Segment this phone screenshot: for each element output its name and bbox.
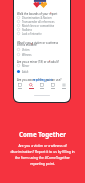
staticText: * — [49, 60, 51, 64]
staticText: Are you a victim or a witness of discrim… — [9, 143, 76, 166]
staticText: Stalking — [22, 28, 32, 31]
staticText: Transgender all references — [22, 20, 55, 23]
staticText: Walk the bounds of your report — [17, 12, 58, 16]
button[interactable]: Share — [48, 83, 58, 89]
staticText: * — [31, 43, 33, 47]
staticText: Adult — [22, 70, 29, 73]
button[interactable]: Minor — [17, 64, 30, 67]
staticText: Discrimination & Racism — [22, 16, 52, 19]
button[interactable]: Adult — [17, 70, 29, 73]
staticText: Victim — [22, 48, 30, 51]
button[interactable]: Victim — [17, 48, 30, 51]
button[interactable]: Discrimination & Racism — [17, 16, 52, 19]
button[interactable]: Save — [37, 83, 47, 89]
staticText: Match lines or competitive — [22, 24, 55, 27]
staticText: Are you a minor (18) or an adult? — [17, 60, 59, 64]
staticText: * — [50, 12, 52, 16]
staticText: Come Together — [19, 130, 66, 138]
button[interactable]: Stalking — [17, 28, 32, 31]
staticText: Lack of integrity — [22, 32, 42, 35]
staticText: you can use? — [45, 78, 62, 82]
button[interactable]: Match lines or competitive — [17, 24, 55, 27]
button[interactable]: Lack of integrity — [17, 32, 42, 35]
button[interactable]: Witness — [17, 53, 32, 56]
staticText: reporting point — [33, 78, 53, 82]
button[interactable]: Home — [15, 83, 25, 89]
button[interactable]: More — [59, 83, 69, 89]
staticText: Minor — [22, 64, 30, 67]
button[interactable]: Search — [26, 83, 36, 89]
button[interactable]: Transgender all references — [17, 20, 55, 23]
staticText: of this incident? — [17, 43, 38, 47]
staticText: Witness — [22, 53, 32, 56]
staticText: What's you a victim or a witness — [17, 41, 59, 45]
staticText: Are you aware of the — [17, 78, 44, 82]
